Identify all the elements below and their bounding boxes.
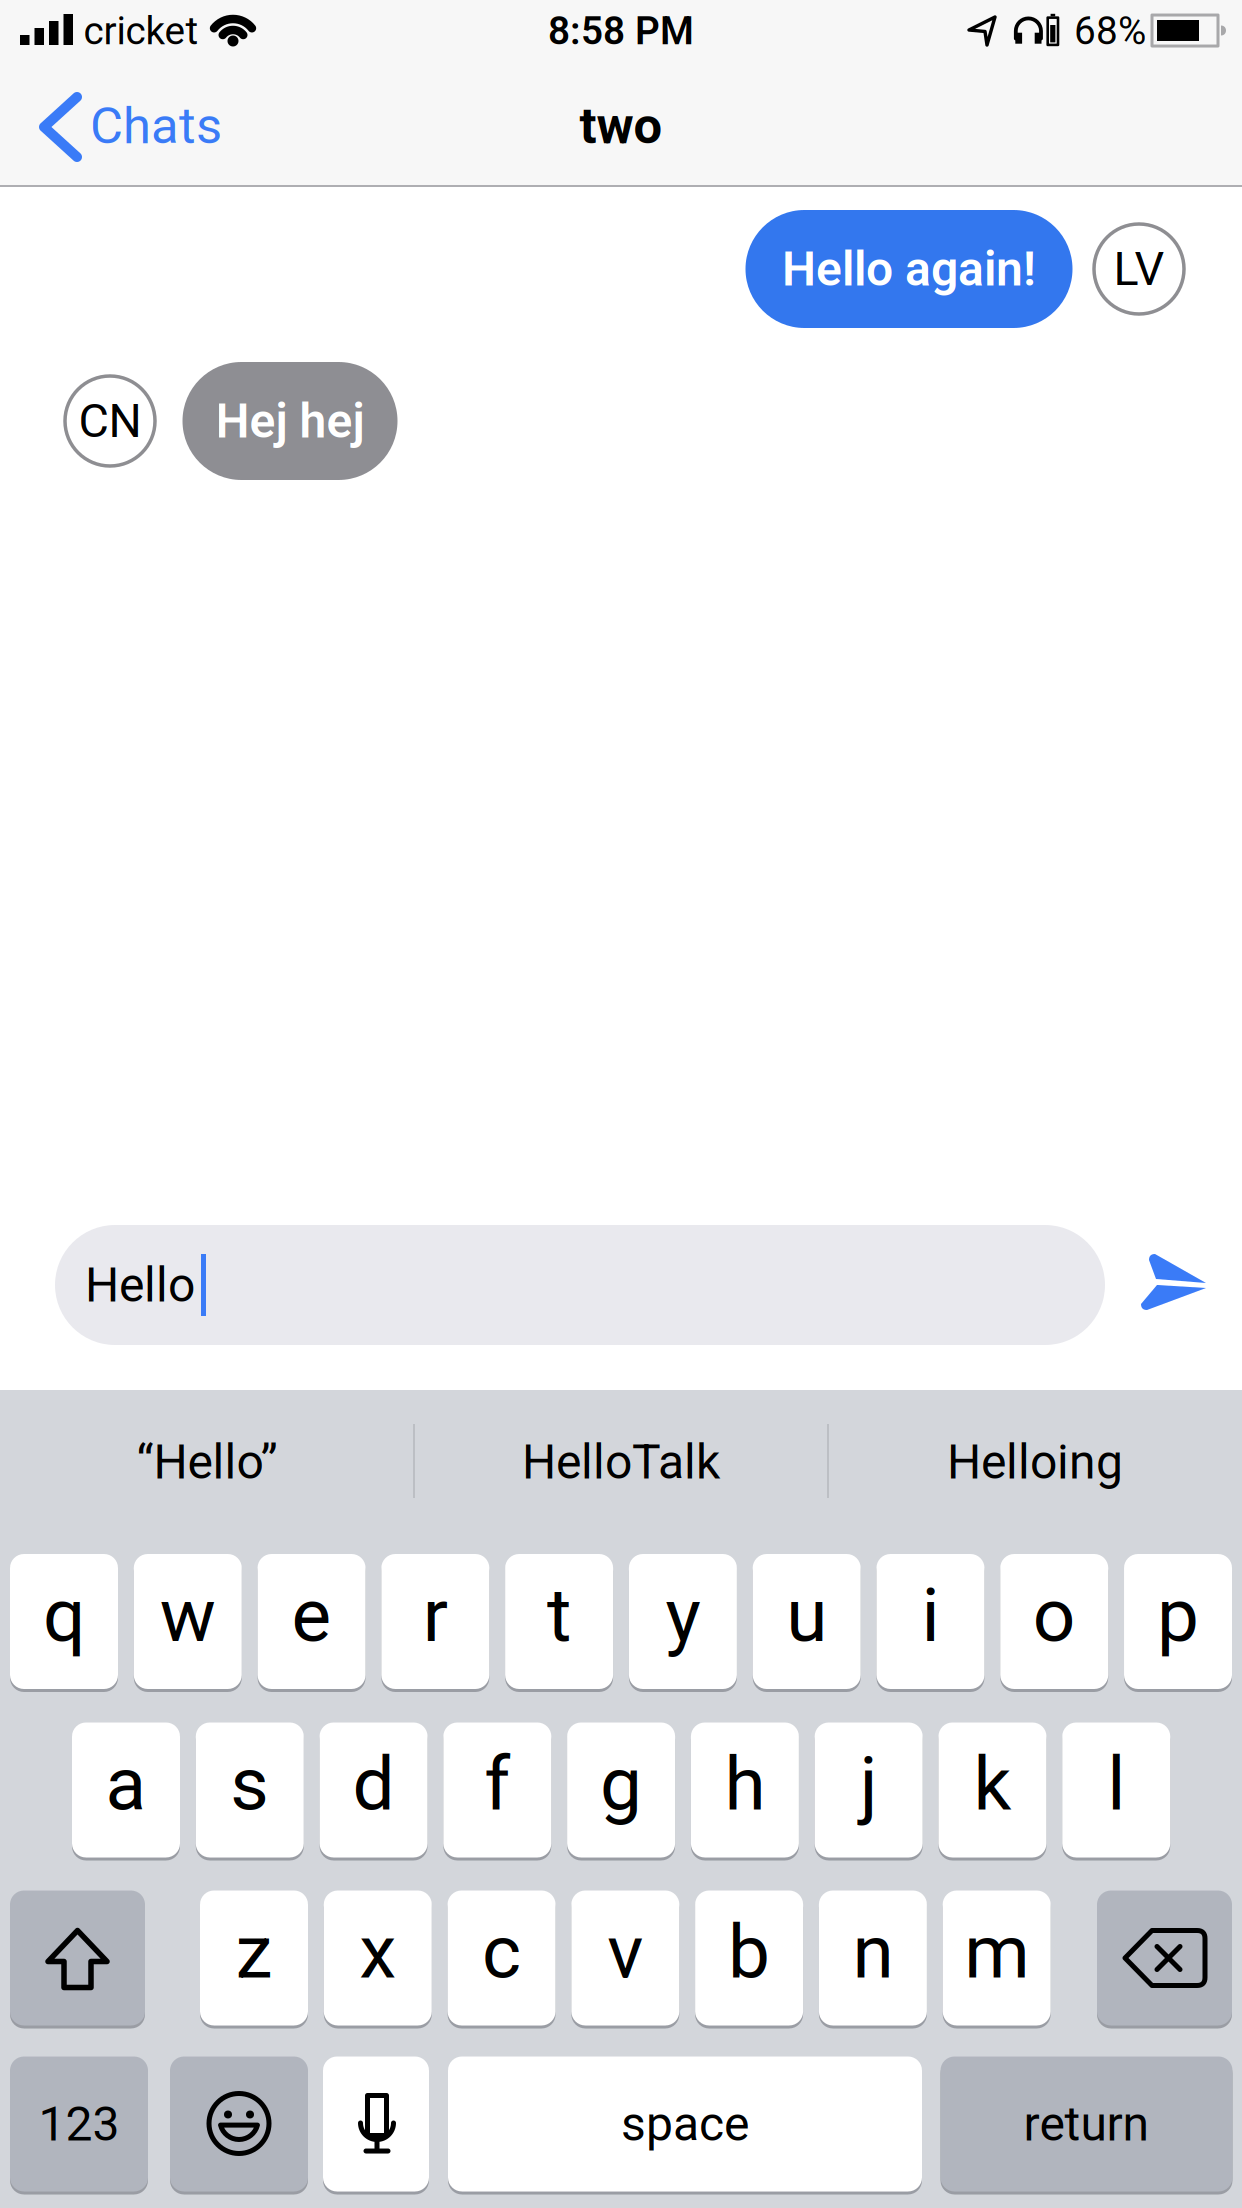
button[interactable]	[170, 2056, 308, 2191]
button[interactable]: Helloing	[835, 1392, 1235, 1532]
staticText: Hello	[85, 1258, 195, 1312]
button[interactable]: Chats	[0, 0, 260, 186]
staticText: 123	[38, 2097, 119, 2151]
button[interactable]: x	[324, 1890, 432, 2025]
button[interactable]: h	[691, 1722, 799, 1857]
staticText: l	[1107, 1741, 1125, 1827]
button[interactable]: f	[443, 1722, 551, 1857]
staticText: v	[607, 1909, 643, 1995]
staticText: w	[160, 1573, 216, 1658]
staticText: n	[852, 1909, 893, 1995]
button[interactable]: j	[815, 1722, 923, 1857]
staticText: u	[786, 1573, 827, 1658]
button[interactable]: z	[200, 1890, 308, 2025]
staticText: 68%	[1074, 9, 1146, 53]
staticText: two	[579, 97, 662, 155]
staticText: “Hello”	[136, 1435, 277, 1489]
staticText: j	[860, 1741, 878, 1827]
staticText: Hello again!	[782, 242, 1036, 296]
button[interactable]: k	[938, 1722, 1046, 1857]
button[interactable]: v	[571, 1890, 679, 2025]
staticText: return	[1023, 2097, 1149, 2151]
staticText: cricket	[83, 9, 198, 53]
button[interactable]: “Hello”	[7, 1392, 407, 1532]
button[interactable]: r	[381, 1554, 489, 1689]
button[interactable]: l	[1062, 1722, 1170, 1857]
staticText: z	[235, 1909, 272, 1995]
staticText: y	[665, 1573, 700, 1658]
staticText: s	[230, 1741, 269, 1827]
button[interactable]	[10, 1890, 145, 2025]
staticText: h	[724, 1741, 765, 1827]
staticText: t	[547, 1573, 571, 1658]
staticText: Helloing	[947, 1435, 1123, 1489]
button[interactable]: HelloTalk	[421, 1392, 821, 1532]
button[interactable]: t	[505, 1554, 613, 1689]
button[interactable]	[1111, 1228, 1242, 1358]
button[interactable]: a	[72, 1722, 180, 1857]
staticText: CN	[78, 394, 141, 448]
button[interactable]: u	[753, 1554, 861, 1689]
button[interactable]: o	[1000, 1554, 1108, 1689]
button[interactable]	[323, 2056, 429, 2191]
staticText: HelloTalk	[522, 1435, 720, 1489]
staticText: Hej hej	[215, 394, 364, 448]
staticText: d	[353, 1741, 395, 1827]
staticText: f	[484, 1741, 510, 1827]
button[interactable]: return	[940, 2056, 1232, 2191]
staticText: o	[1033, 1573, 1076, 1658]
button[interactable]	[1097, 1890, 1232, 2025]
button[interactable]: b	[695, 1890, 803, 2025]
staticText: x	[359, 1909, 396, 1995]
button[interactable]: d	[320, 1722, 428, 1857]
staticText: space	[621, 2097, 749, 2151]
button[interactable]: p	[1124, 1554, 1232, 1689]
button[interactable]: g	[567, 1722, 675, 1857]
button[interactable]: s	[196, 1722, 304, 1857]
button[interactable]: e	[258, 1554, 366, 1689]
staticText: a	[105, 1741, 146, 1827]
button[interactable]: m	[943, 1890, 1051, 2025]
staticText: k	[973, 1741, 1011, 1827]
staticText: i	[921, 1573, 939, 1658]
button[interactable]: Hello	[55, 1225, 1105, 1345]
button[interactable]: 123	[10, 2056, 148, 2191]
button[interactable]: w	[134, 1554, 242, 1689]
staticText: m	[964, 1909, 1029, 1995]
staticText: q	[43, 1573, 85, 1658]
button[interactable]: y	[629, 1554, 737, 1689]
staticText: r	[423, 1573, 448, 1658]
button[interactable]: c	[448, 1890, 556, 2025]
button[interactable]: space	[448, 2056, 922, 2191]
staticText: c	[482, 1909, 521, 1995]
staticText: g	[600, 1741, 642, 1827]
staticText: b	[728, 1909, 770, 1995]
staticText: LV	[1113, 242, 1164, 296]
staticText: p	[1157, 1573, 1199, 1658]
staticText: Chats	[90, 97, 222, 155]
button[interactable]: i	[876, 1554, 984, 1689]
button[interactable]: n	[819, 1890, 927, 2025]
staticText: e	[292, 1573, 332, 1658]
button[interactable]: q	[10, 1554, 118, 1689]
staticText: 8:58 PM	[548, 9, 694, 53]
